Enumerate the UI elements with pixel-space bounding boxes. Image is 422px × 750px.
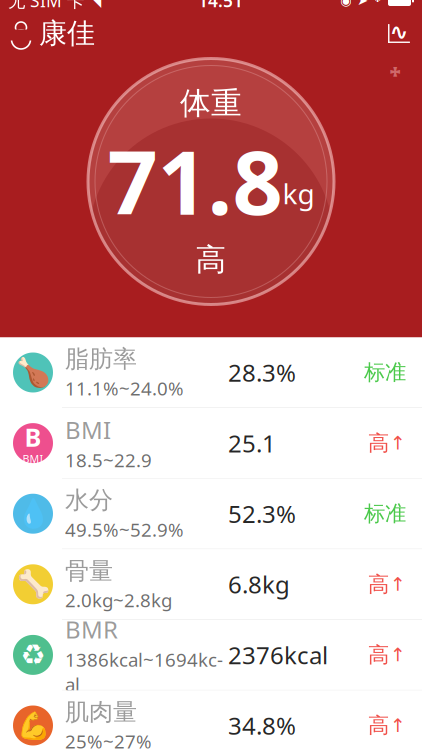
staticText: 高 [368, 571, 389, 597]
staticText: 2376kcal [228, 639, 328, 671]
staticText: 28.3% [228, 357, 296, 388]
staticText: 71.8 [107, 122, 282, 239]
staticText: 骨量 [65, 556, 113, 586]
staticText: ↑ [390, 574, 406, 595]
staticText: ↑ [390, 644, 406, 665]
staticText: 高 [368, 430, 389, 456]
staticText: 25%~27% [65, 729, 152, 750]
staticText: BMR [65, 613, 118, 645]
staticText: 高 [195, 241, 226, 279]
staticText: 6.8kg [228, 568, 290, 600]
staticText: 14:51 [198, 0, 243, 12]
staticText: B [24, 420, 41, 454]
staticText: 🦴 [16, 569, 49, 600]
staticText: 18.5~22.9 [65, 448, 152, 472]
staticText: 💪 [16, 710, 49, 741]
button[interactable]: 🍗 [0, 337, 422, 407]
staticText: 💧 [15, 498, 50, 530]
button[interactable]: 🦴 [0, 549, 422, 619]
staticText: ᛭ [373, 0, 383, 8]
staticText: 49.5%~52.9% [65, 517, 184, 542]
staticText: 肌肉量 [65, 697, 137, 727]
staticText: 无 SIM 卡 [8, 0, 84, 12]
staticText: BMI [65, 414, 111, 446]
staticText: 标准 [364, 501, 406, 527]
staticText: BMI [22, 452, 43, 466]
staticText: ◥ [89, 0, 101, 10]
button[interactable]: ♻︎ [0, 620, 422, 690]
staticText: ➤ [357, 0, 368, 8]
staticText: 水分 [65, 486, 113, 515]
staticText: 1386kcal~1694kcal [65, 647, 223, 697]
staticText: ◉ [340, 0, 352, 8]
staticText: 34.8% [228, 710, 296, 741]
button[interactable]: 康佳 [0, 11, 105, 55]
staticText: ↑ [390, 432, 406, 454]
staticText: ∿ [389, 19, 408, 45]
staticText: 高 [368, 642, 389, 668]
staticText: 高 [368, 712, 389, 739]
staticText: 52.3% [228, 498, 296, 530]
staticText: 标准 [364, 359, 406, 386]
staticText: 11.1%~24.0% [65, 376, 184, 401]
staticText: 2.0kg~2.8kg [65, 588, 172, 612]
staticText: ᛭ [386, 58, 404, 88]
staticText: 25.1 [228, 427, 276, 459]
staticText: 脂肪率 [65, 344, 137, 374]
staticText: 康佳 [39, 16, 95, 51]
button[interactable]: B [0, 408, 422, 478]
staticText: kg [282, 175, 314, 212]
staticText: 体重 [180, 84, 242, 122]
button[interactable]: 趋势图表 [376, 11, 422, 55]
staticText: ↑ [390, 715, 406, 736]
button[interactable]: 💪 [0, 690, 422, 750]
staticText: ♻︎ [20, 639, 45, 671]
staticText: 🍗 [15, 356, 50, 388]
button[interactable]: 💧 [0, 479, 422, 549]
